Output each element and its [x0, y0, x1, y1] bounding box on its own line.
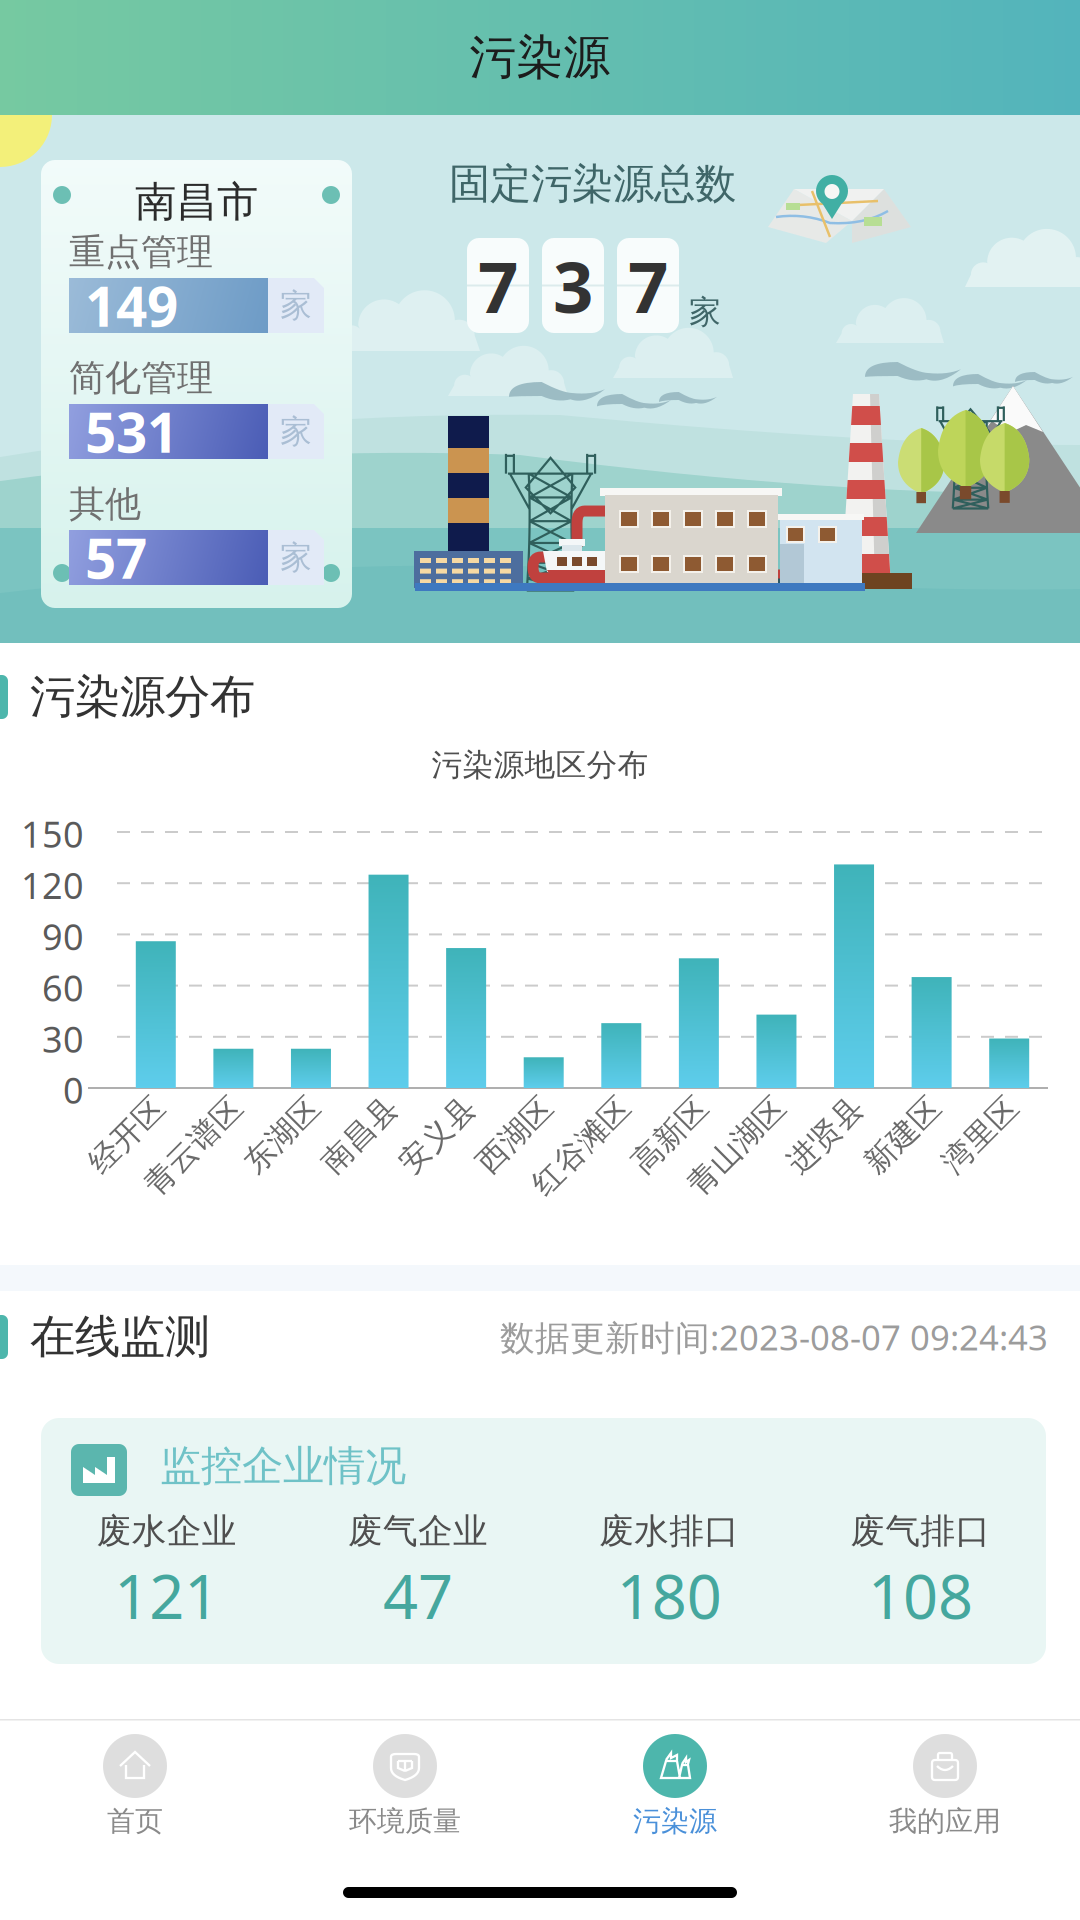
staticText: 149	[85, 269, 178, 342]
staticText: 湾里区	[920, 1083, 1013, 1121]
staticText: 污染源	[633, 1804, 717, 1838]
staticText: 进贤县	[765, 1083, 858, 1121]
staticText: 废水企业	[97, 1510, 237, 1553]
staticText: 固定污染源总数	[449, 159, 736, 209]
staticText: 青山湖区	[656, 1083, 780, 1121]
staticText: 90	[42, 912, 84, 960]
staticText: 180	[617, 1555, 722, 1636]
staticText: 531	[85, 395, 178, 468]
staticText: 监控企业情况	[160, 1441, 406, 1491]
button[interactable]: 环境质量	[270, 1730, 540, 1842]
button[interactable]: 污染源	[540, 1730, 810, 1842]
staticText: 环境质量	[349, 1804, 461, 1838]
staticText: 在线监测	[30, 1309, 210, 1365]
staticText: 家	[689, 292, 721, 332]
staticText: 108	[868, 1555, 973, 1636]
staticText: 经开区	[67, 1083, 160, 1121]
staticText: 首页	[107, 1804, 163, 1838]
staticText: 家	[280, 286, 312, 325]
staticText: 其他	[69, 482, 141, 526]
staticText: 家	[280, 412, 312, 451]
button[interactable]: 首页	[0, 1730, 270, 1842]
staticText: 南昌市	[135, 177, 258, 227]
staticText: 污染源地区分布	[431, 746, 648, 784]
staticText: 废气排口	[850, 1510, 990, 1553]
button[interactable]: 我的应用	[810, 1730, 1080, 1842]
staticText: 新建区	[843, 1083, 936, 1121]
staticText: 60	[42, 964, 84, 1011]
staticText: 青云谱区	[113, 1083, 237, 1121]
staticText: 污染源	[469, 29, 610, 86]
staticText: 红谷滩区	[501, 1083, 625, 1121]
staticText: 南昌县	[299, 1083, 392, 1121]
staticText: 废气企业	[348, 1510, 488, 1553]
staticText: 简化管理	[69, 356, 213, 400]
staticText: 数据更新时间:2023-08-07 09:24:43	[500, 1314, 1048, 1360]
staticText: 西湖区	[455, 1083, 548, 1121]
staticText: 重点管理	[69, 230, 213, 274]
staticText: 0	[63, 1066, 84, 1114]
staticText: 3	[553, 239, 593, 332]
staticText: 废水排口	[599, 1510, 739, 1553]
staticText: 57	[85, 521, 147, 594]
staticText: 污染源分布	[30, 669, 255, 725]
staticText: 150	[21, 810, 84, 858]
staticText: 121	[114, 1555, 219, 1636]
staticText: 东湖区	[222, 1083, 315, 1121]
staticText: 家	[280, 538, 312, 577]
staticText: 47	[383, 1555, 453, 1636]
staticText: 120	[21, 861, 84, 909]
staticText: 7	[628, 239, 668, 332]
staticText: 安义县	[377, 1083, 470, 1121]
staticText: 7	[478, 239, 518, 332]
staticText: 高新区	[610, 1083, 703, 1121]
staticText: 30	[42, 1015, 84, 1063]
staticText: 我的应用	[889, 1804, 1001, 1838]
